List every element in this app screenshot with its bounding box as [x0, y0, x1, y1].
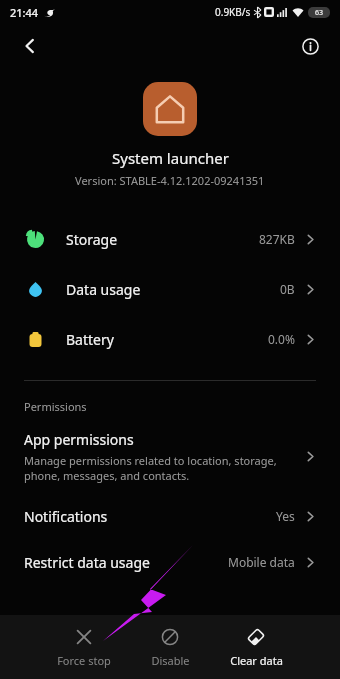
staticText: Storage: [66, 230, 118, 249]
button[interactable]: Battery: [0, 314, 340, 364]
button[interactable]: Notifications: [0, 493, 340, 539]
button[interactable]: App info: [292, 28, 328, 64]
staticText: Restrict data usage: [24, 553, 150, 572]
button[interactable]: Clear data: [213, 623, 299, 672]
staticText: Force stop: [57, 653, 111, 668]
staticText: Data usage: [66, 280, 141, 299]
staticText: 0.9KB/s: [215, 5, 251, 19]
staticText: Mobile data: [228, 554, 295, 570]
staticText: Clear data: [230, 653, 283, 668]
staticText: Notifications: [24, 507, 108, 526]
staticText: App permissions: [24, 430, 134, 449]
button[interactable]: Storage: [0, 214, 340, 264]
staticText: Version: STABLE-4.12.1202-09241351: [75, 173, 265, 188]
button[interactable]: Disable: [127, 623, 213, 672]
button[interactable]: Force stop: [41, 623, 127, 672]
staticText: 21:44: [10, 5, 39, 20]
button[interactable]: Restrict data usage: [0, 539, 340, 585]
staticText: Battery: [66, 330, 114, 349]
staticText: 0B: [280, 281, 295, 297]
button[interactable]: App permissions: [0, 426, 340, 487]
staticText: 0.0%: [268, 331, 295, 347]
button[interactable]: Back: [12, 28, 48, 64]
staticText: 63: [315, 8, 324, 18]
button[interactable]: Data usage: [0, 264, 340, 314]
staticText: Manage permissions related to location, …: [24, 453, 295, 483]
staticText: Permissions: [24, 399, 87, 414]
staticText: 827KB: [259, 231, 295, 247]
staticText: System launcher: [112, 148, 229, 168]
staticText: Disable: [151, 653, 190, 668]
staticText: Yes: [276, 508, 295, 524]
